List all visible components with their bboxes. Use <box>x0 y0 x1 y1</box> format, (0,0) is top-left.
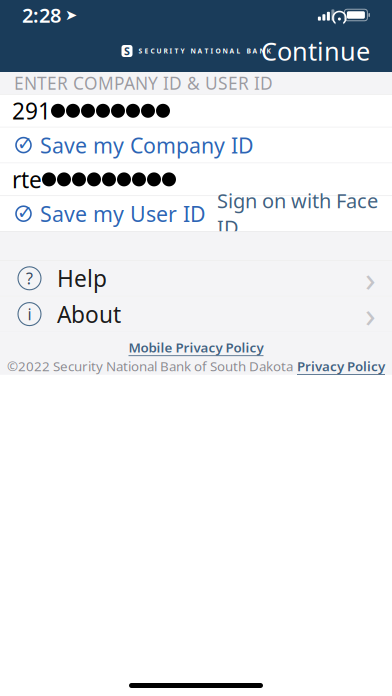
staticText: Sign on with Face ID <box>217 187 378 240</box>
staticText: 291 <box>12 96 51 126</box>
staticText: S E C U R I T Y N A T I O N A L B A N K <box>138 47 270 55</box>
staticText: Save my Company ID <box>40 131 254 159</box>
staticText: Privacy Policy <box>297 357 385 375</box>
staticText: 2:28 <box>22 2 61 28</box>
button[interactable]: Continue <box>250 28 381 74</box>
staticText: i <box>27 303 31 325</box>
staticText: ➤ <box>65 7 77 23</box>
staticText: Continue <box>261 34 370 68</box>
button[interactable]: ✓ <box>0 128 392 163</box>
staticText: Mobile Privacy Policy <box>128 338 263 356</box>
button[interactable]: Privacy Policy <box>297 357 385 375</box>
staticText: S <box>124 44 130 58</box>
staticText: Help <box>57 263 107 293</box>
staticText: › <box>365 291 376 337</box>
staticText: ✓ <box>17 202 33 223</box>
staticText: About <box>57 299 121 329</box>
button[interactable]: ✓ <box>0 196 392 231</box>
staticText: ✓ <box>17 133 33 154</box>
button[interactable]: i <box>0 297 392 332</box>
staticText: rte <box>12 164 42 194</box>
staticText: Save my User ID <box>40 199 206 228</box>
staticText: › <box>365 255 376 301</box>
button[interactable]: Mobile Privacy Policy <box>128 338 263 356</box>
staticText: ENTER COMPANY ID & USER ID <box>14 71 273 94</box>
staticText: ? <box>26 268 33 289</box>
staticText: ©2022 Security National Bank of South Da… <box>7 357 293 375</box>
button[interactable]: ? <box>0 261 392 296</box>
